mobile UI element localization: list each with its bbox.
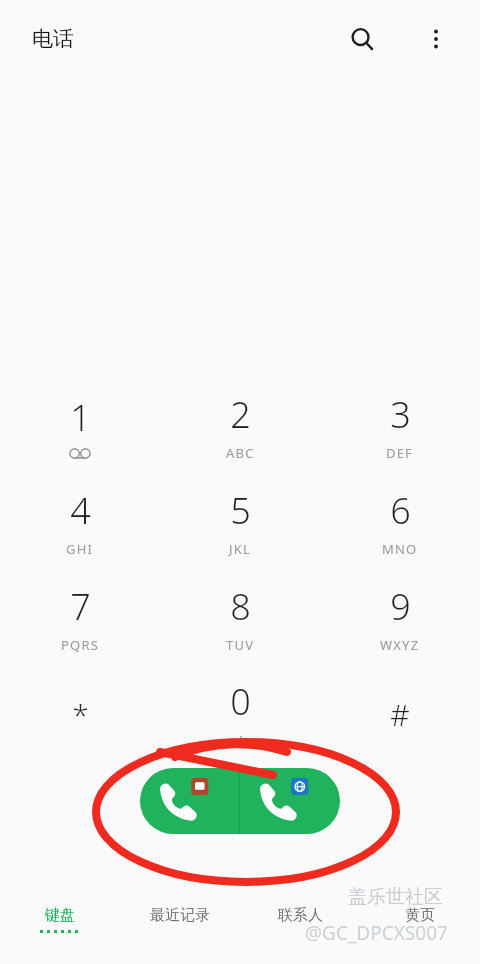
staticText: 联系人: [278, 906, 323, 925]
staticText: 4: [70, 486, 91, 535]
staticText: 3: [390, 390, 411, 439]
staticText: 盖乐世社区: [348, 885, 443, 909]
staticText: 键盘: [45, 906, 75, 925]
button[interactable]: 键盘: [0, 890, 120, 964]
button[interactable]: 7: [0, 570, 160, 666]
button[interactable]: 2: [160, 378, 320, 474]
button[interactable]: 联系人: [240, 890, 360, 964]
button[interactable]: 最近记录: [120, 890, 240, 964]
button[interactable]: 4: [0, 474, 160, 570]
button[interactable]: Internet call: [240, 768, 340, 834]
staticText: MNO: [382, 540, 418, 558]
button[interactable]: 8: [160, 570, 320, 666]
staticText: 黄页: [405, 906, 435, 925]
staticText: +: [236, 728, 246, 751]
button[interactable]: #: [320, 666, 480, 762]
staticText: 最近记录: [150, 906, 210, 925]
button[interactable]: 黄页: [360, 890, 480, 964]
staticText: 0: [230, 677, 251, 726]
button[interactable]: 6: [320, 474, 480, 570]
staticText: DEF: [386, 444, 414, 462]
button[interactable]: 9: [320, 570, 480, 666]
button[interactable]: 5: [160, 474, 320, 570]
staticText: 电话: [32, 26, 74, 52]
staticText: 1: [70, 393, 91, 442]
staticText: 5: [230, 486, 251, 535]
staticText: TUV: [226, 636, 255, 654]
staticText: 8: [230, 582, 251, 631]
staticText: JKL: [229, 540, 252, 558]
button[interactable]: Search: [340, 17, 384, 61]
staticText: GHI: [66, 540, 94, 558]
staticText: 6: [390, 486, 411, 535]
button[interactable]: 3: [320, 378, 480, 474]
button[interactable]: 0: [160, 666, 320, 762]
button[interactable]: Call SIM 1: [140, 768, 239, 834]
staticText: WXYZ: [380, 636, 420, 654]
button[interactable]: *: [0, 666, 160, 762]
staticText: #: [390, 694, 410, 735]
staticText: @GC_DPCXS007: [305, 920, 448, 946]
button[interactable]: 1: [0, 378, 160, 474]
staticText: PQRS: [61, 636, 100, 654]
staticText: *: [72, 694, 89, 735]
button[interactable]: More options: [414, 17, 458, 61]
staticText: ABC: [226, 444, 255, 462]
staticText: 7: [70, 582, 91, 631]
staticText: 9: [390, 582, 411, 631]
staticText: 2: [230, 390, 251, 439]
